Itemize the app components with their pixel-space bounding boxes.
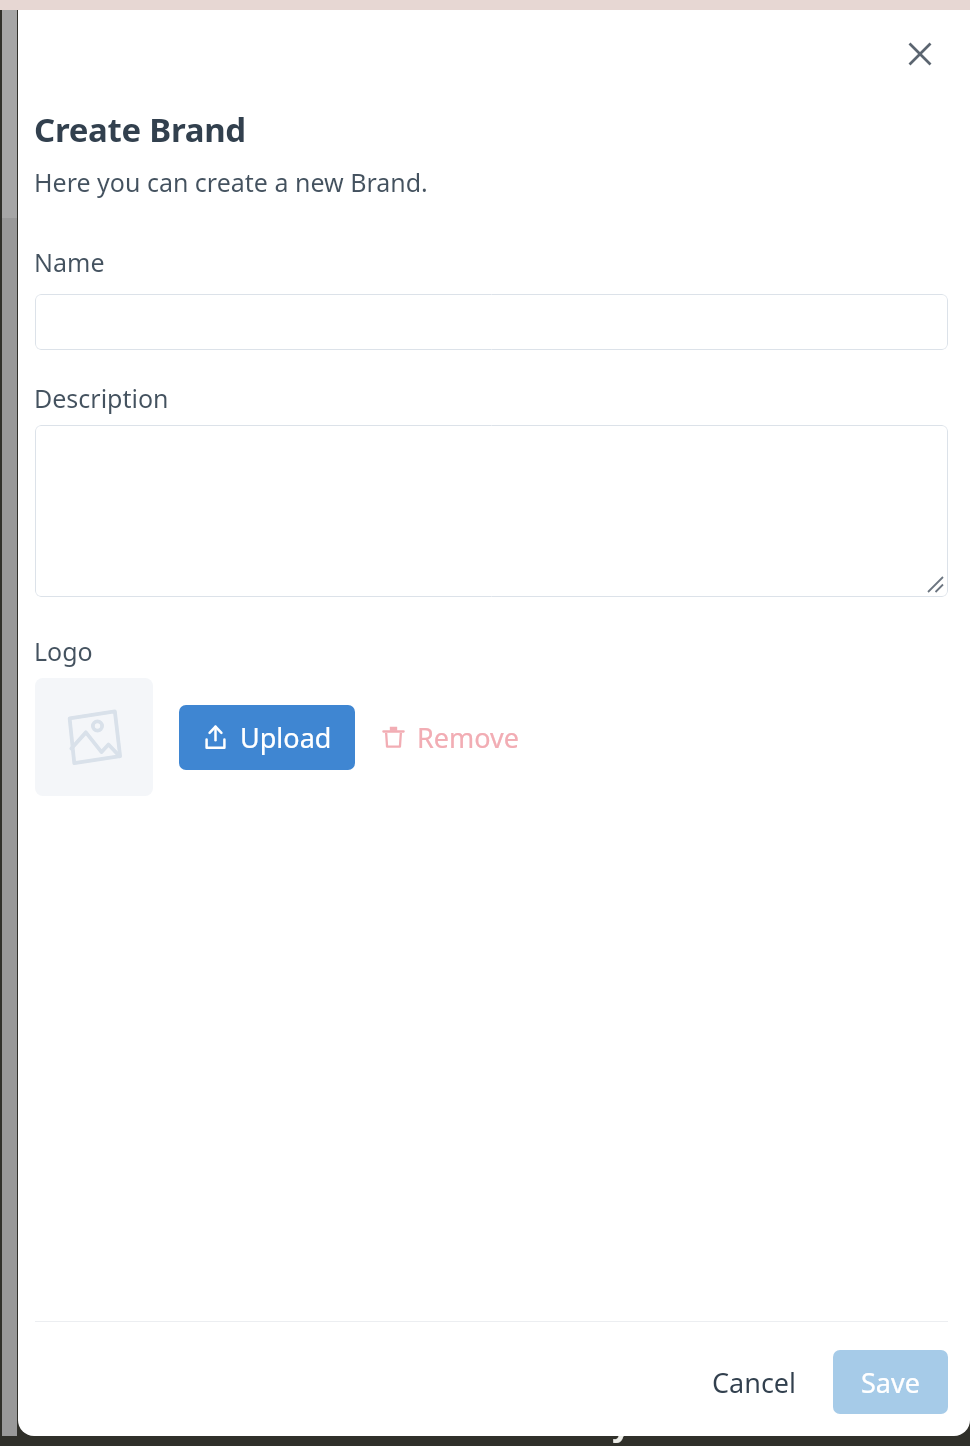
staticText: Cancel	[712, 1364, 797, 1401]
staticText: Upload	[240, 719, 332, 756]
staticText: Description	[34, 381, 169, 415]
staticText: Remove	[417, 719, 520, 756]
button[interactable]: Save	[833, 1350, 948, 1414]
button[interactable]: Close	[896, 30, 944, 78]
button[interactable]: Remove	[372, 708, 530, 766]
staticText: Here you can create a new Brand.	[34, 165, 428, 199]
button[interactable]	[35, 294, 948, 350]
staticText: Name	[34, 245, 105, 279]
button[interactable]: Upload	[179, 705, 355, 770]
staticText: Save	[861, 1364, 920, 1401]
staticText: Logo	[34, 634, 93, 668]
staticText: Grammarly	[456, 1403, 631, 1445]
staticText: Create Brand	[34, 107, 246, 152]
button[interactable]	[35, 425, 948, 597]
button[interactable]: Cancel	[692, 1352, 816, 1412]
